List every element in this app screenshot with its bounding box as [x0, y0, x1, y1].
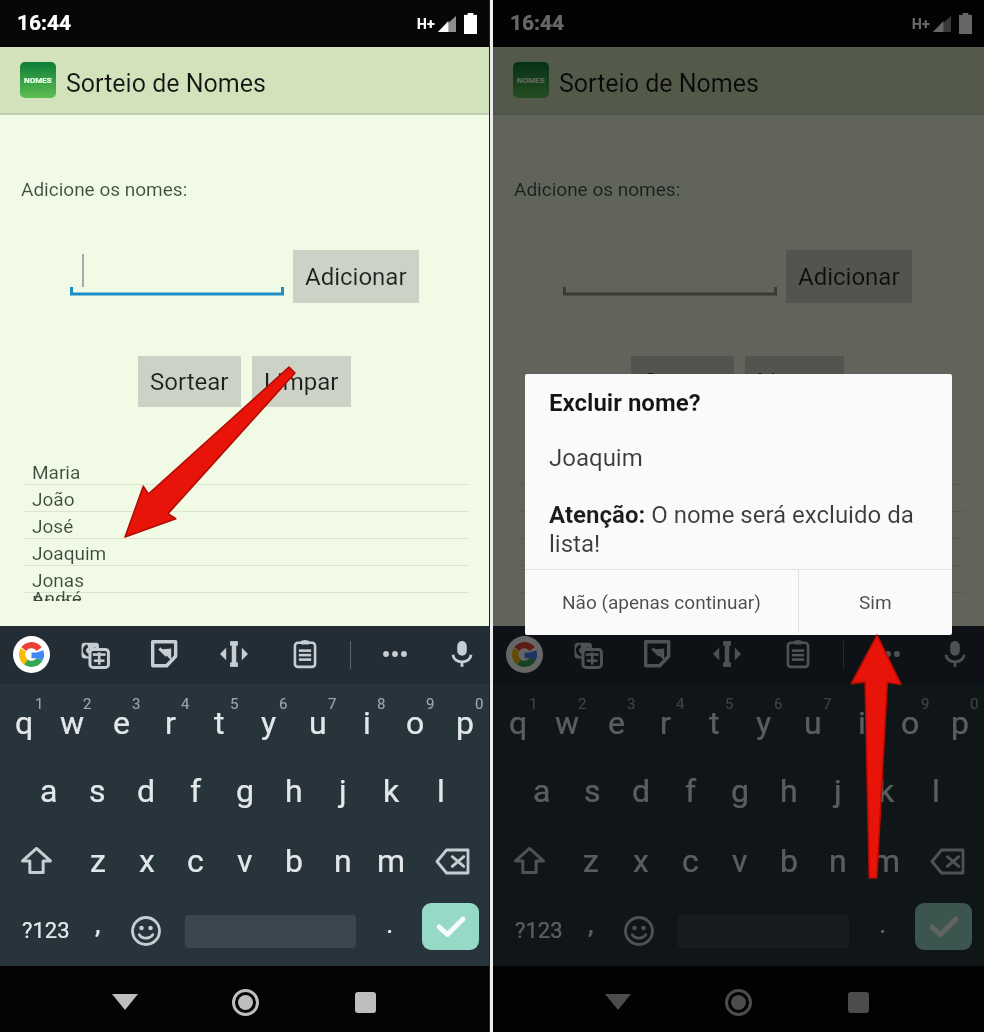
button[interactable]: Google	[13, 636, 50, 673]
button[interactable]: g	[220, 756, 269, 826]
button[interactable]: Shift	[0, 826, 73, 896]
button[interactable]: t	[195, 684, 244, 756]
button[interactable]: Back	[590, 974, 646, 1030]
button[interactable]: n	[813, 826, 862, 896]
button[interactable]: Enter	[422, 903, 479, 950]
button[interactable]: q	[493, 684, 543, 756]
button[interactable]: o	[886, 684, 935, 756]
button[interactable]: f	[666, 756, 715, 826]
button[interactable]: v	[220, 826, 269, 896]
button[interactable]: Emoji	[619, 896, 659, 966]
button[interactable]: José	[493, 512, 984, 539]
button[interactable]: o	[391, 684, 440, 756]
button[interactable]: j	[318, 756, 367, 826]
button[interactable]: y	[739, 684, 788, 756]
button[interactable]: Google	[506, 636, 543, 673]
button[interactable]: u	[293, 684, 342, 756]
button[interactable]: .	[370, 896, 410, 966]
button[interactable]: Recent apps	[830, 974, 886, 1030]
button[interactable]: r	[641, 684, 690, 756]
button[interactable]: Clipboard	[782, 638, 814, 670]
button[interactable]: Translate	[79, 638, 111, 670]
button[interactable]: a	[517, 756, 567, 826]
button[interactable]: ?123	[501, 896, 577, 966]
button[interactable]: Voice input	[939, 638, 971, 670]
button[interactable]: c	[171, 826, 220, 896]
button[interactable]: Recent apps	[337, 974, 393, 1030]
button[interactable]: m	[862, 826, 911, 896]
button[interactable]: Home	[710, 974, 766, 1030]
button[interactable]: h	[764, 756, 813, 826]
button[interactable]: ,	[75, 896, 121, 966]
button[interactable]: Limpar	[745, 356, 844, 407]
button[interactable]: Space	[170, 896, 370, 966]
button[interactable]: d	[617, 756, 666, 826]
button[interactable]: c	[666, 826, 715, 896]
button[interactable]: u	[788, 684, 837, 756]
button[interactable]: m	[367, 826, 416, 896]
button[interactable]: e	[97, 684, 146, 756]
button[interactable]: a	[24, 756, 73, 826]
button[interactable]: h	[269, 756, 318, 826]
button[interactable]: Adicionar	[293, 250, 419, 303]
button[interactable]: y	[244, 684, 293, 756]
button[interactable]: .	[863, 896, 903, 966]
button[interactable]: p	[935, 684, 984, 756]
button[interactable]: Shift	[493, 826, 566, 896]
button[interactable]: Sticker	[149, 638, 181, 670]
button[interactable]: Back	[97, 974, 153, 1030]
button[interactable]: w	[48, 684, 97, 756]
button[interactable]: t	[690, 684, 739, 756]
button[interactable]: d	[122, 756, 171, 826]
button[interactable]: e	[592, 684, 641, 756]
button[interactable]: i	[837, 684, 886, 756]
button[interactable]: Backspace	[416, 826, 489, 896]
button[interactable]: f	[171, 756, 220, 826]
button[interactable]: Voice input	[446, 638, 478, 670]
button[interactable]: Home	[217, 974, 273, 1030]
button[interactable]: José	[0, 512, 489, 539]
button[interactable]: Clipboard	[289, 638, 321, 670]
button[interactable]: Adicionar	[786, 250, 912, 303]
button[interactable]: Jonas	[493, 566, 984, 593]
button[interactable]: Não (apenas continuar)	[525, 570, 798, 633]
button[interactable]: Joaquim	[0, 539, 489, 566]
button[interactable]: Sortear	[138, 356, 241, 407]
button[interactable]: g	[715, 756, 764, 826]
button[interactable]: k	[862, 756, 911, 826]
button[interactable]: João	[0, 485, 489, 512]
button[interactable]: z	[566, 826, 616, 896]
button[interactable]: w	[543, 684, 592, 756]
button[interactable]: Sim	[799, 570, 952, 633]
button[interactable]: p	[440, 684, 489, 756]
button[interactable]	[563, 246, 777, 298]
button[interactable]: André	[493, 584, 984, 601]
button[interactable]: Translate	[572, 638, 604, 670]
button[interactable]: Jonas	[0, 566, 489, 593]
button[interactable]: Space	[663, 896, 863, 966]
button[interactable]: Sortear	[631, 356, 734, 407]
button[interactable]: João	[493, 485, 984, 512]
button[interactable]: Limpar	[252, 356, 351, 407]
button[interactable]: André	[0, 584, 489, 601]
button[interactable]: z	[73, 826, 122, 896]
button[interactable]: Joaquim	[493, 539, 984, 566]
button[interactable]: j	[813, 756, 862, 826]
button[interactable]: Bruno	[493, 588, 984, 601]
button[interactable]: v	[715, 826, 764, 896]
button[interactable]: s	[567, 756, 617, 826]
button[interactable]: Sticker	[642, 638, 674, 670]
button[interactable]: ?123	[8, 896, 84, 966]
button[interactable]: Maria	[493, 458, 984, 485]
button[interactable]: Enter	[915, 903, 972, 950]
button[interactable]: Maria	[0, 458, 489, 485]
button[interactable]: Bruno	[0, 588, 489, 601]
button[interactable]: i	[342, 684, 391, 756]
button[interactable]: Text cursor	[218, 638, 250, 670]
button[interactable]: n	[318, 826, 367, 896]
button[interactable]: l	[416, 756, 465, 826]
button[interactable]: Emoji	[126, 896, 166, 966]
button[interactable]: ,	[568, 896, 614, 966]
button[interactable]: q	[0, 684, 48, 756]
button[interactable]: l	[911, 756, 960, 826]
